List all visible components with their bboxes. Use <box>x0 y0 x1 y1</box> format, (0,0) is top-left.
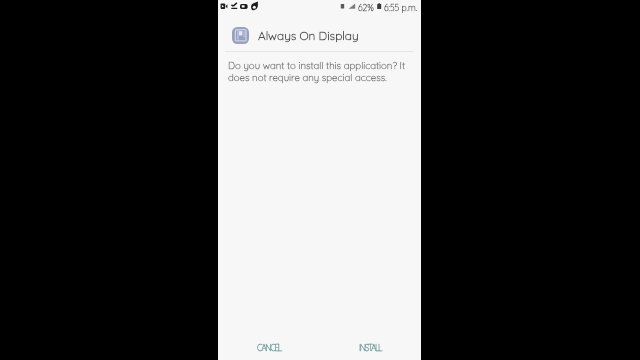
staticText: Always On Display <box>258 28 359 43</box>
staticText: INSTALL <box>359 342 382 353</box>
button[interactable]: CANCEL <box>245 336 292 358</box>
button[interactable]: INSTALL <box>347 336 394 358</box>
staticText: 62% <box>358 2 374 13</box>
staticText: 6:55 p.m. <box>384 2 418 13</box>
other: Always On Display app icon <box>232 27 249 44</box>
staticText: Do you want to install this application?… <box>228 59 410 83</box>
staticText: CANCEL <box>257 342 281 353</box>
other: Status bar <box>218 0 421 14</box>
